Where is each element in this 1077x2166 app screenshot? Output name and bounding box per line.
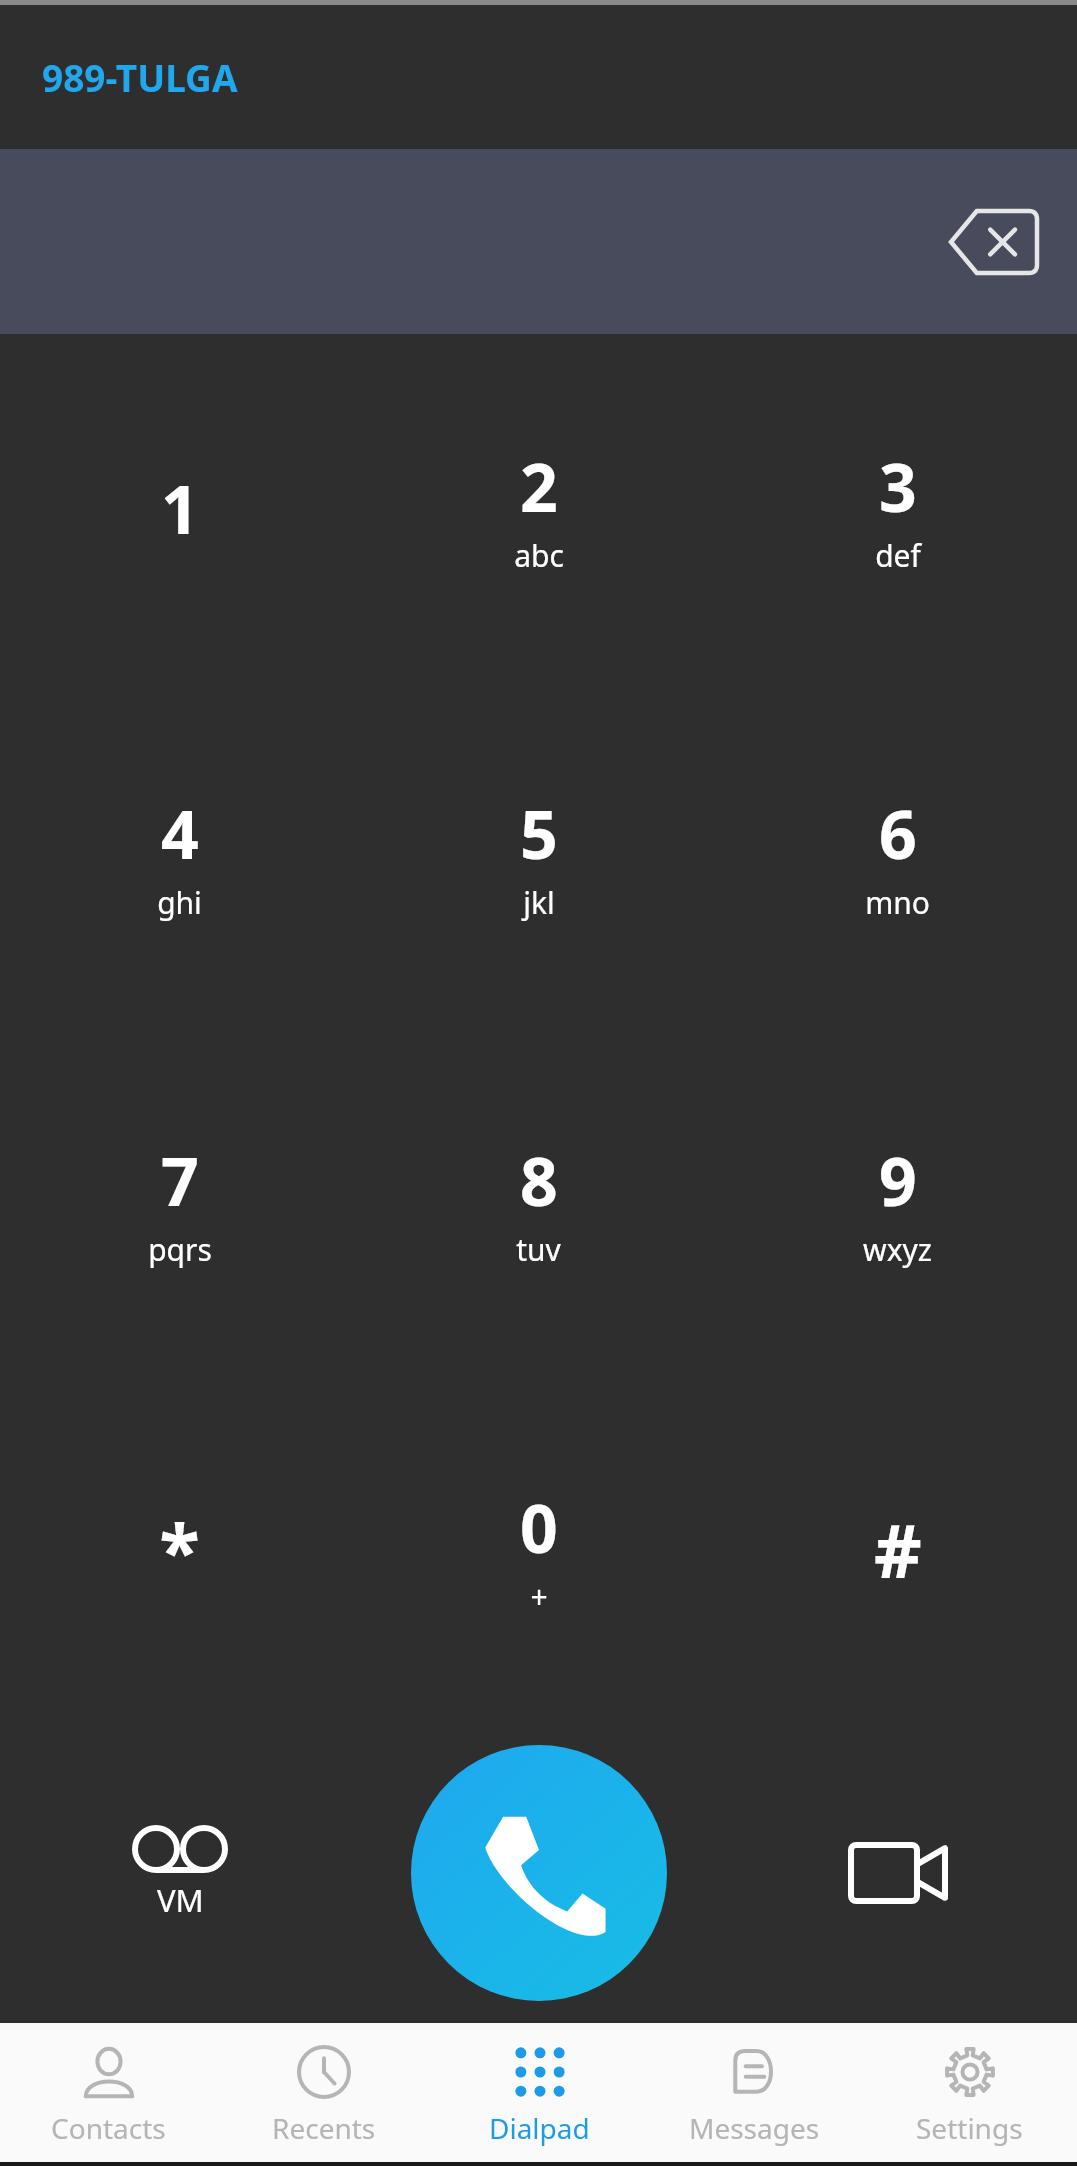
staticText: VM: [157, 1879, 204, 1921]
staticText: wxyz: [863, 1229, 932, 1270]
button[interactable]: 1: [0, 334, 359, 682]
button[interactable]: Backspace: [939, 187, 1049, 297]
staticText: Messages: [689, 2109, 820, 2147]
staticText: 1: [161, 463, 199, 553]
staticText: Contacts: [51, 2109, 166, 2147]
staticText: tuv: [516, 1229, 561, 1270]
staticText: jkl: [523, 882, 555, 923]
staticText: +: [530, 1576, 548, 1617]
staticText: mno: [865, 882, 930, 923]
staticText: Settings: [916, 2109, 1023, 2147]
button[interactable]: 5: [359, 682, 718, 1029]
button[interactable]: 6: [718, 682, 1077, 1029]
staticText: 989-TULGA: [42, 52, 238, 102]
button[interactable]: 4: [0, 682, 359, 1029]
staticText: 2: [520, 441, 558, 531]
button[interactable]: #: [718, 1376, 1077, 1723]
button[interactable]: 3: [718, 334, 1077, 682]
staticText: 5: [520, 788, 558, 878]
staticText: abc: [514, 535, 564, 576]
staticText: #: [874, 1499, 922, 1600]
button[interactable]: 8: [359, 1029, 718, 1376]
button[interactable]: Call: [411, 1745, 667, 2001]
button[interactable]: 7: [0, 1029, 359, 1376]
staticText: pqrs: [148, 1229, 212, 1270]
button[interactable]: 9: [718, 1029, 1077, 1376]
staticText: 0: [520, 1482, 558, 1572]
button[interactable]: Settings: [862, 2023, 1077, 2166]
button[interactable]: Contacts: [0, 2023, 216, 2166]
button[interactable]: Messages: [647, 2023, 862, 2166]
button[interactable]: Video call: [718, 1723, 1077, 2023]
staticText: 4: [161, 788, 199, 878]
staticText: 8: [520, 1135, 558, 1225]
staticText: 3: [879, 441, 917, 531]
button[interactable]: Dialpad: [432, 2023, 647, 2166]
staticText: *: [159, 1499, 200, 1600]
button[interactable]: 2: [359, 334, 718, 682]
button[interactable]: *: [0, 1376, 359, 1723]
staticText: 6: [879, 788, 917, 878]
staticText: ghi: [157, 882, 202, 923]
button[interactable]: Recents: [216, 2023, 432, 2166]
staticText: 9: [879, 1135, 917, 1225]
staticText: Recents: [272, 2109, 376, 2147]
staticText: 7: [161, 1135, 199, 1225]
staticText: def: [875, 535, 921, 576]
button[interactable]: Voicemail: [0, 1723, 359, 2023]
staticText: Dialpad: [489, 2109, 590, 2147]
button[interactable]: 0: [359, 1376, 718, 1723]
